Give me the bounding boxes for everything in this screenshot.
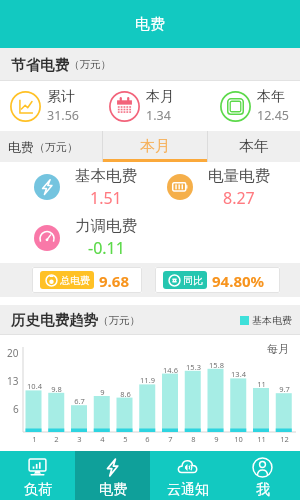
staticText: 本月: [146, 88, 174, 106]
staticText: 6.7: [74, 396, 85, 406]
staticText: -0.11: [88, 237, 125, 259]
button[interactable]: 本年: [200, 81, 300, 131]
button[interactable]: 云通知: [150, 451, 225, 500]
button[interactable]: 力调电费: [34, 212, 167, 263]
staticText: （万元）: [34, 140, 78, 154]
button[interactable]: 我: [225, 451, 300, 500]
staticText: 基本电费: [252, 314, 292, 327]
staticText: 3: [77, 434, 82, 444]
staticText: 我: [256, 481, 270, 499]
staticText: 每月: [267, 342, 289, 356]
staticText: 20: [7, 346, 19, 360]
staticText: 10: [234, 434, 243, 444]
button[interactable]: 电费: [75, 451, 150, 500]
button[interactable]: 本月: [100, 81, 200, 131]
staticText: 11.9: [140, 375, 155, 385]
staticText: 1: [32, 434, 37, 444]
staticText: 5: [123, 434, 128, 444]
staticText: 14.6: [163, 365, 178, 375]
button[interactable]: 本月: [103, 131, 207, 162]
staticText: 12.45: [257, 107, 289, 124]
staticText: 12: [280, 434, 289, 444]
staticText: 节省电费: [11, 56, 69, 74]
staticText: 本年: [257, 88, 285, 106]
button[interactable]: 基本电费: [34, 162, 167, 212]
staticText: 8: [191, 434, 196, 444]
staticText: 15.3: [186, 362, 201, 372]
button[interactable]: 总电费: [32, 267, 142, 293]
button[interactable]: 同比: [155, 267, 280, 293]
staticText: 6: [13, 402, 19, 416]
staticText: 94.80%: [212, 271, 265, 289]
staticText: 13.4: [231, 369, 246, 379]
staticText: 11: [257, 379, 266, 389]
staticText: 9.8: [51, 384, 62, 394]
staticText: 8.6: [120, 389, 131, 399]
staticText: 本年: [239, 137, 269, 156]
staticText: （万元）: [98, 314, 140, 327]
staticText: 4: [100, 434, 105, 444]
staticText: 13: [7, 374, 19, 388]
staticText: 9.7: [279, 384, 290, 394]
staticText: 本月: [140, 137, 170, 156]
staticText: 9: [214, 434, 219, 444]
staticText: 同比: [183, 274, 203, 287]
staticText: 1.51: [90, 187, 122, 209]
staticText: 10.4: [27, 381, 42, 391]
staticText: 基本电费: [75, 166, 137, 186]
staticText: 11: [257, 434, 266, 444]
staticText: 1.34: [146, 107, 171, 124]
button[interactable]: 电量电费: [167, 162, 300, 212]
staticText: 15.8: [209, 360, 224, 370]
button[interactable]: 本年: [208, 131, 300, 162]
staticText: 负荷: [24, 481, 52, 499]
staticText: 力调电费: [75, 216, 137, 236]
staticText: 电费: [8, 139, 34, 155]
staticText: 31.56: [47, 107, 79, 124]
staticText: 6: [145, 434, 150, 444]
staticText: 7: [168, 434, 173, 444]
staticText: 云通知: [167, 481, 209, 499]
staticText: 累计: [47, 88, 75, 106]
staticText: 电费: [99, 481, 127, 499]
staticText: 9.68: [99, 271, 129, 289]
button[interactable]: 电费: [0, 131, 102, 162]
staticText: 电费: [135, 15, 165, 34]
button[interactable]: 负荷: [0, 451, 75, 500]
staticText: 总电费: [60, 274, 90, 287]
staticText: 8.27: [223, 187, 255, 209]
staticText: 电量电费: [208, 166, 270, 186]
button[interactable]: 累计: [0, 81, 100, 131]
staticText: 历史电费趋势: [11, 311, 98, 329]
staticText: （万元）: [69, 58, 111, 71]
staticText: 2: [54, 434, 59, 444]
staticText: 9: [100, 387, 105, 397]
